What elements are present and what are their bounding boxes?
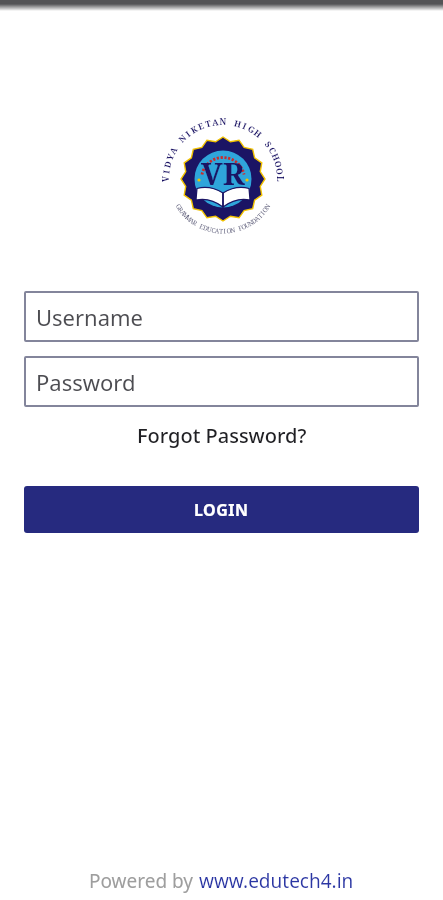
- staticText: Powered by: [89, 868, 199, 894]
- staticText: Username: [36, 302, 144, 332]
- button[interactable]: Forgot Password?: [137, 422, 307, 449]
- staticText: LOGIN: [194, 499, 249, 521]
- button[interactable]: LOGIN: [24, 486, 419, 533]
- button[interactable]: www.edutech4.in: [199, 868, 354, 894]
- button[interactable]: Password: [24, 356, 419, 407]
- button[interactable]: Username: [24, 291, 419, 342]
- staticText: Password: [36, 367, 136, 397]
